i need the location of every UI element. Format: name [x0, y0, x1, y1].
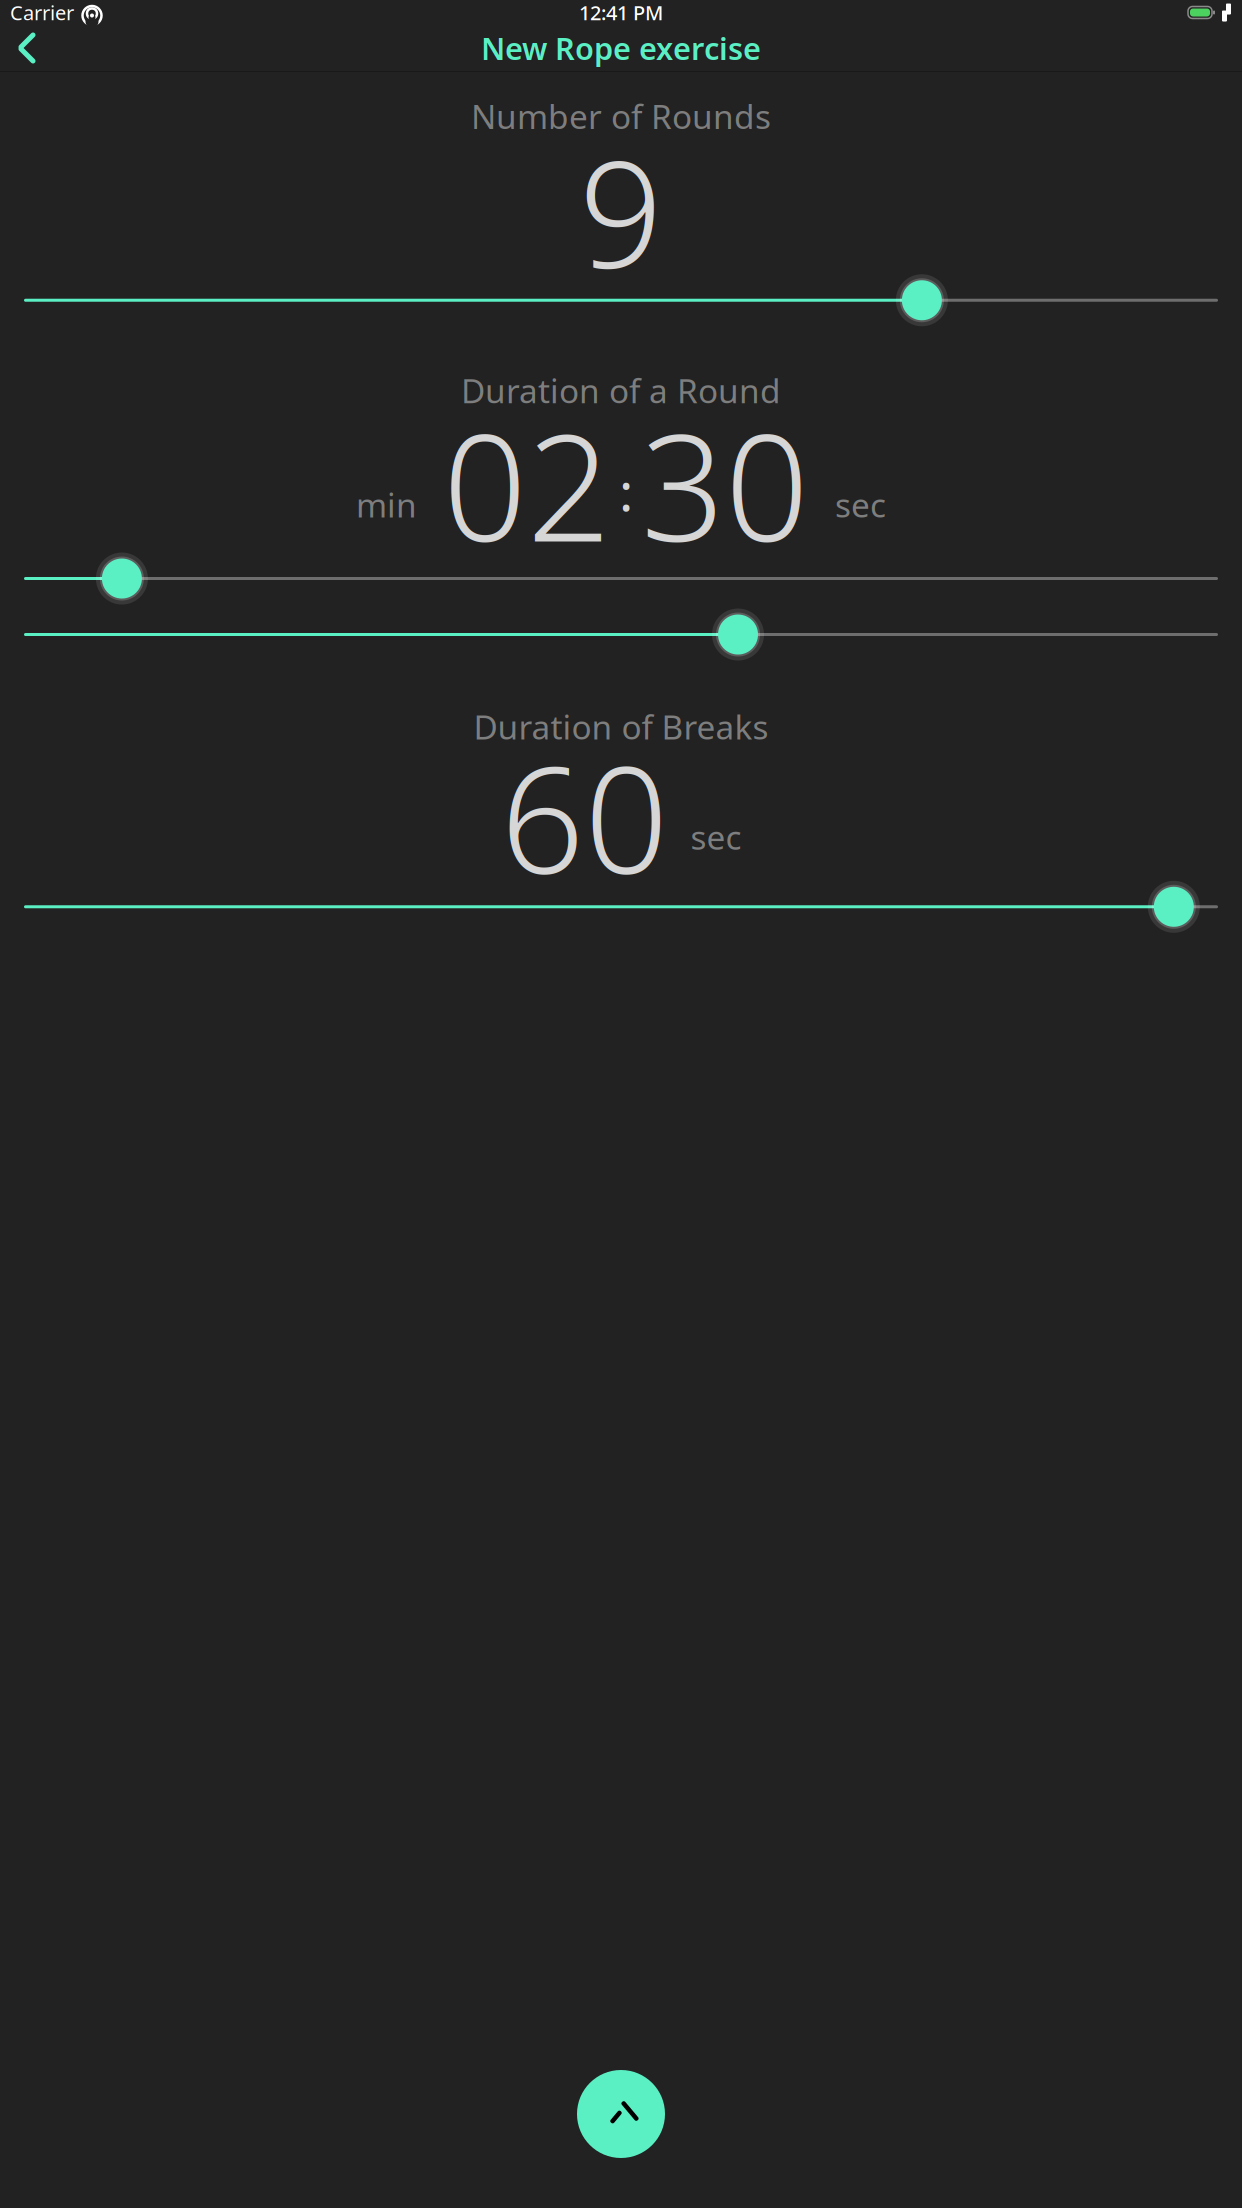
staticText: 60 [500, 719, 668, 914]
staticText: : [619, 455, 633, 526]
staticText: 02 [443, 387, 611, 582]
staticText: sec [835, 482, 886, 527]
staticText: min [356, 482, 417, 527]
button[interactable]: Slider [24, 608, 1218, 660]
staticText: New Rope exercise [481, 28, 761, 68]
button[interactable]: Slider [24, 881, 1218, 933]
staticText: 12:41 PM [579, 0, 663, 26]
staticText: sec [690, 815, 741, 859]
staticText: Duration of a Round [461, 368, 781, 413]
button[interactable]: Slider [24, 552, 1218, 604]
staticText: 9 [579, 113, 663, 308]
staticText: Duration of Breaks [473, 704, 768, 749]
staticText: Carrier [10, 0, 74, 26]
button[interactable]: Back [0, 26, 54, 70]
staticText: 30 [641, 387, 809, 582]
staticText: Number of Rounds [471, 94, 771, 138]
button[interactable]: Confirm [577, 2070, 665, 2158]
button[interactable]: Slider [24, 274, 1218, 326]
